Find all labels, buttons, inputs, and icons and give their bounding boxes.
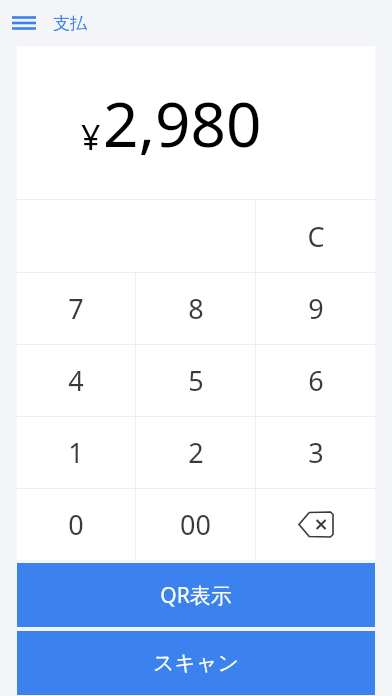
staticText: スキャン <box>153 650 239 676</box>
staticText: 7 <box>68 290 84 327</box>
button[interactable]: 0 <box>17 489 135 560</box>
staticText: 6 <box>308 362 324 399</box>
button[interactable]: C <box>256 200 375 272</box>
staticText: 4 <box>68 362 84 399</box>
staticText: ¥ <box>81 114 101 160</box>
button[interactable]: Backspace <box>256 489 375 560</box>
button[interactable]: 8 <box>136 273 255 344</box>
button[interactable]: 3 <box>256 417 375 488</box>
button[interactable]: Menu <box>6 5 42 41</box>
staticText: 8 <box>188 290 204 327</box>
button[interactable]: 2 <box>136 417 255 488</box>
button[interactable]: 6 <box>256 345 375 416</box>
staticText: 9 <box>308 290 324 327</box>
staticText: 3 <box>308 434 324 471</box>
button[interactable]: 7 <box>17 273 135 344</box>
button[interactable]: QR表示 <box>17 563 375 627</box>
staticText: 1 <box>68 434 84 471</box>
staticText: 0 <box>68 506 84 543</box>
staticText: 5 <box>188 362 204 399</box>
button[interactable]: 1 <box>17 417 135 488</box>
button[interactable]: 4 <box>17 345 135 416</box>
button[interactable]: スキャン <box>17 631 375 695</box>
button[interactable]: 9 <box>256 273 375 344</box>
button[interactable]: 00 <box>136 489 255 560</box>
staticText: 2 <box>188 434 204 471</box>
button[interactable]: 5 <box>136 345 255 416</box>
staticText: 支払 <box>53 13 87 34</box>
staticText: C <box>307 218 325 255</box>
staticText: QR表示 <box>160 581 232 610</box>
staticText: 2,980 <box>103 81 262 165</box>
staticText: 00 <box>180 506 211 543</box>
